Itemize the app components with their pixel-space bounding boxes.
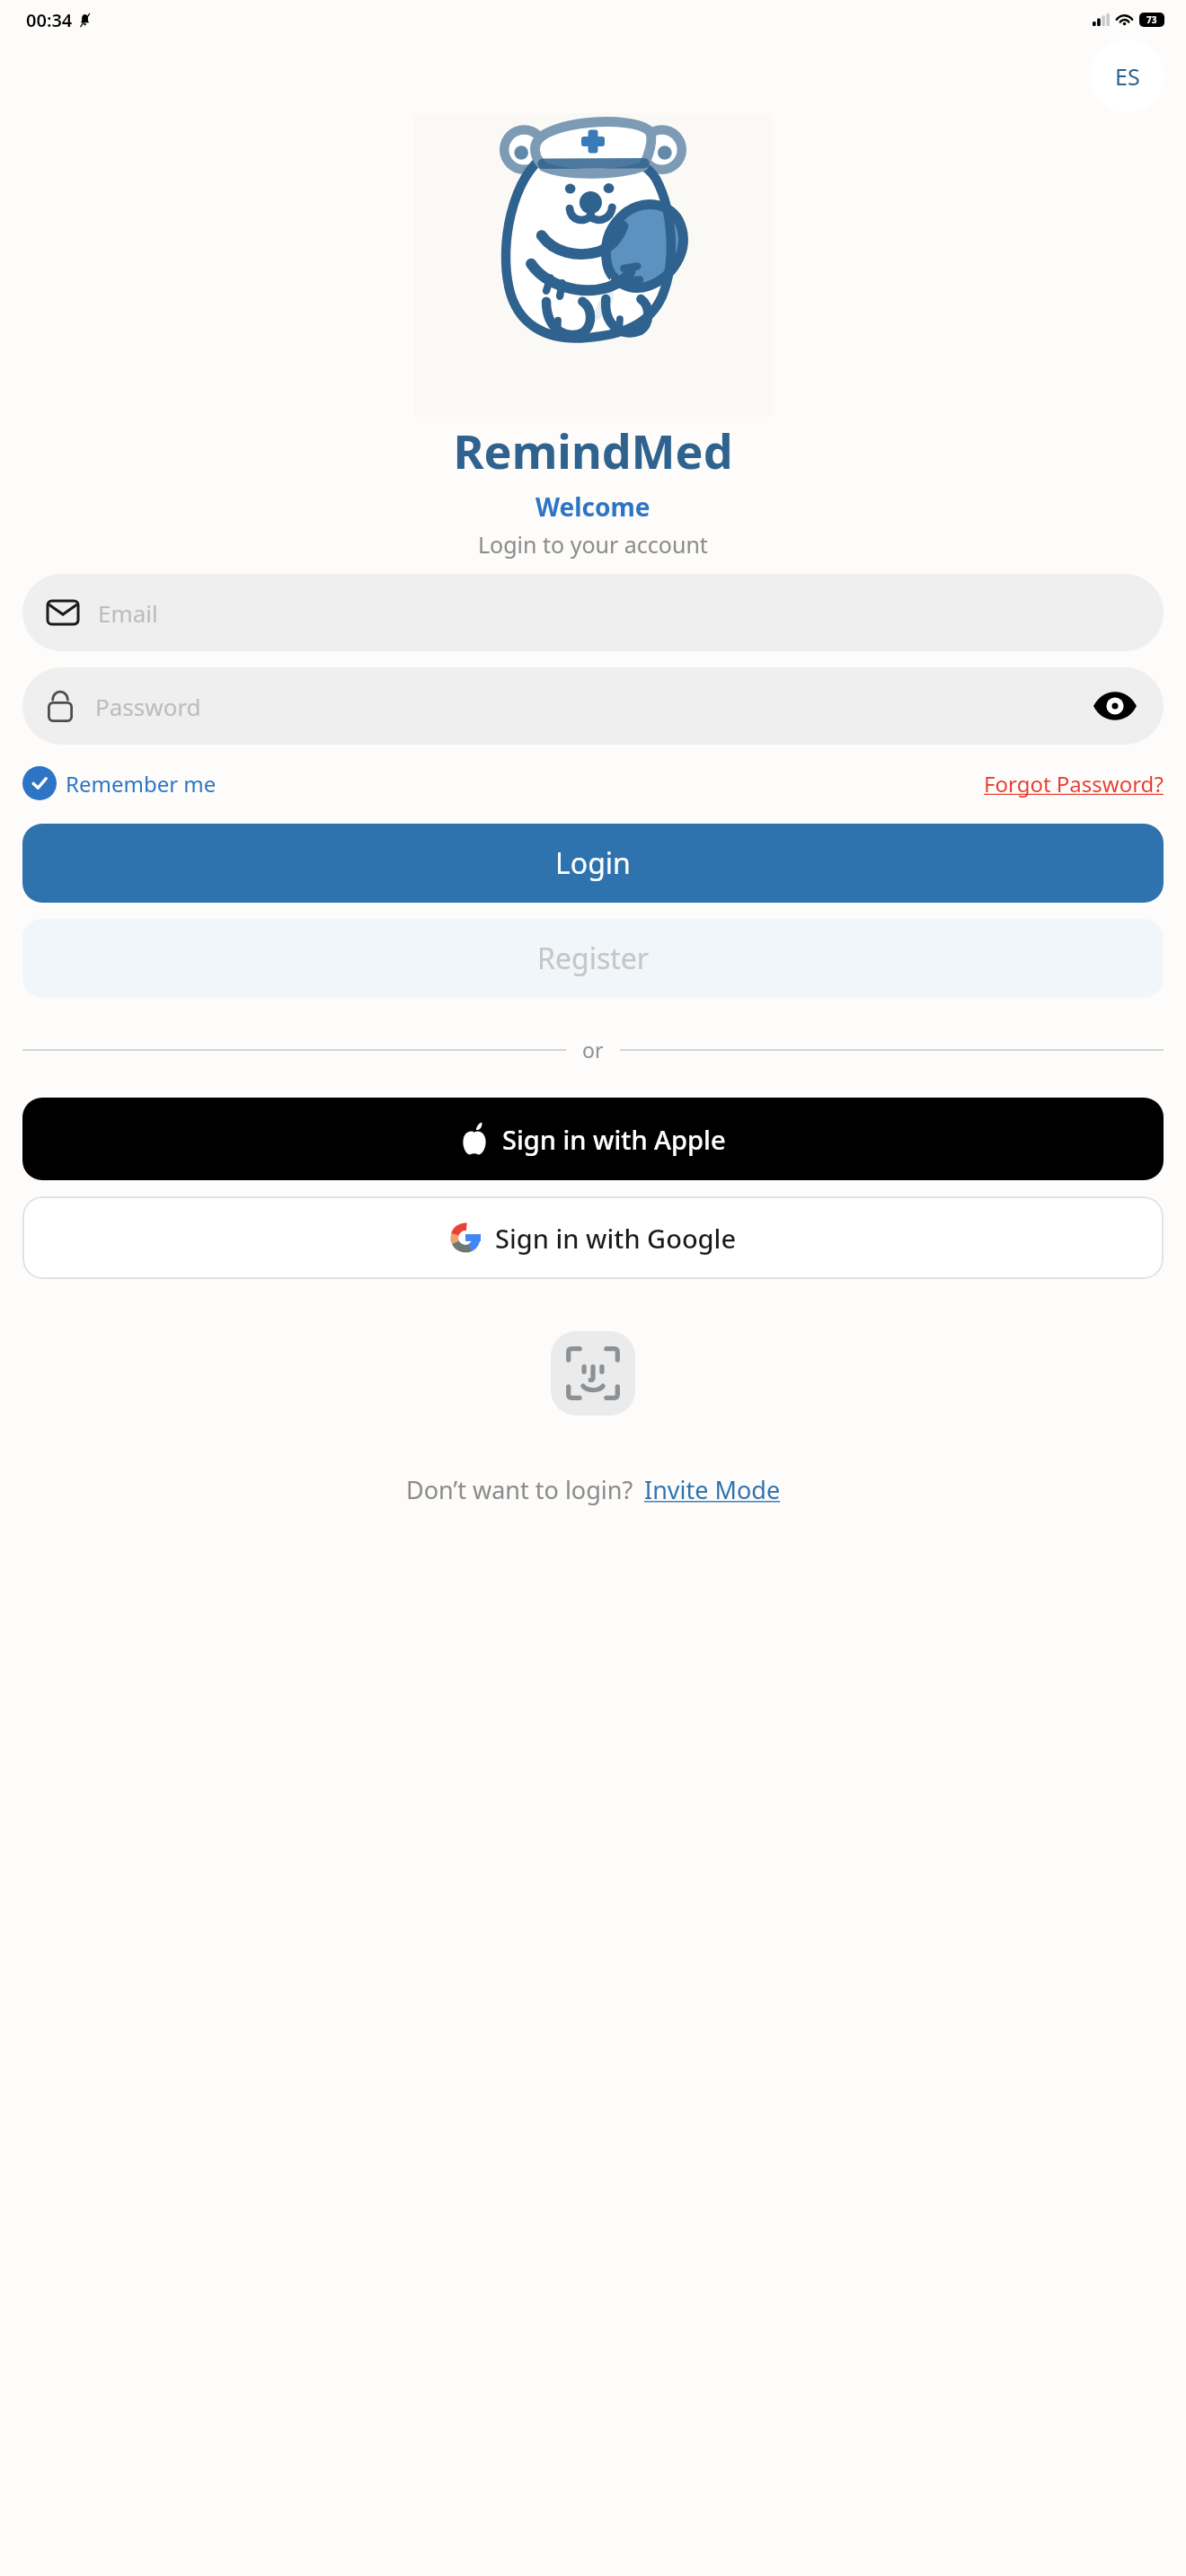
staticText: 00:34 [26,8,73,32]
button[interactable]: Email [22,574,1164,651]
staticText: 73 [1146,13,1157,26]
button[interactable]: Login [22,824,1164,903]
button[interactable]: Sign in with Apple [22,1098,1164,1180]
staticText: or [582,1036,604,1063]
staticText: Invite Mode [644,1473,781,1506]
staticText: Forgot Password? [984,769,1164,798]
button[interactable]: Show password [1092,683,1138,729]
button[interactable]: Register [22,919,1164,998]
button[interactable]: Sign in with Google [22,1196,1164,1279]
button[interactable]: ES [1091,40,1164,113]
staticText: Email [98,597,158,629]
staticText: Remember me [66,769,217,798]
button[interactable]: Password [22,667,1164,745]
staticText: RemindMed [453,419,733,482]
staticText: Register [537,939,650,978]
button[interactable]: Forgot Password? [984,769,1164,798]
staticText: Password [95,691,201,722]
staticText: Don’t want to login? [406,1473,633,1506]
staticText: Login to your account [478,529,708,560]
button[interactable]: Face ID login [551,1331,635,1416]
staticText: Welcome [535,490,651,524]
staticText: Sign in with Google [495,1221,737,1256]
staticText: ES [1115,61,1140,92]
staticText: Sign in with Apple [502,1122,726,1157]
button[interactable]: Remember me [22,766,217,800]
button[interactable]: Invite Mode [644,1473,781,1506]
staticText: Login [555,843,631,883]
